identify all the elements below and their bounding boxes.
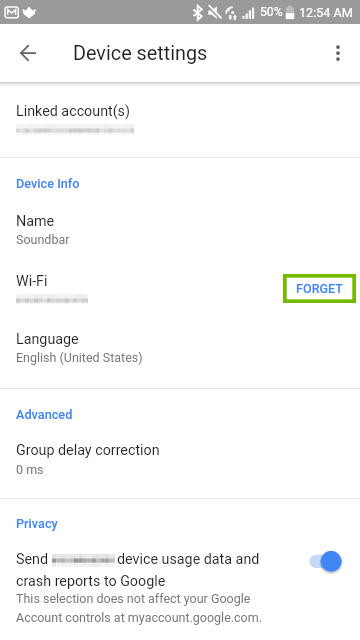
- staticText: Privacy: [16, 516, 58, 531]
- staticText: English (United States): [16, 350, 143, 365]
- staticText: Advanced: [16, 407, 73, 422]
- staticText: crash reports to Google: [16, 573, 166, 590]
- button[interactable]: [0, 93, 360, 141]
- staticText: Device settings: [73, 42, 208, 65]
- button[interactable]: FORGET: [283, 274, 356, 303]
- staticText: 12:54 AM: [299, 5, 353, 20]
- staticText: Soundbar: [16, 232, 70, 247]
- staticText: FORGET: [296, 281, 343, 296]
- staticText: Group delay correction: [16, 442, 160, 459]
- staticText: 50%: [260, 5, 283, 19]
- button[interactable]: [0, 541, 360, 631]
- staticText: Linked account(s): [16, 103, 130, 120]
- button[interactable]: [0, 263, 360, 311]
- button[interactable]: Send device usage data toggle: [306, 545, 350, 578]
- staticText: This selection does not affect your Goog…: [16, 591, 251, 606]
- button[interactable]: More options: [320, 35, 356, 71]
- button[interactable]: [0, 204, 360, 250]
- staticText: Wi-Fi: [16, 273, 48, 290]
- staticText: Name: [16, 213, 55, 230]
- button[interactable]: [0, 322, 360, 368]
- staticText: Language: [16, 331, 79, 348]
- staticText: 0 ms: [16, 462, 44, 477]
- staticText: Device Info: [16, 176, 80, 191]
- staticText: device usage data and: [117, 551, 260, 568]
- staticText: Send: [16, 551, 49, 568]
- button[interactable]: Navigate up: [10, 35, 46, 71]
- staticText: Account controls at myaccount.google.com…: [16, 610, 263, 625]
- button[interactable]: [0, 433, 360, 479]
